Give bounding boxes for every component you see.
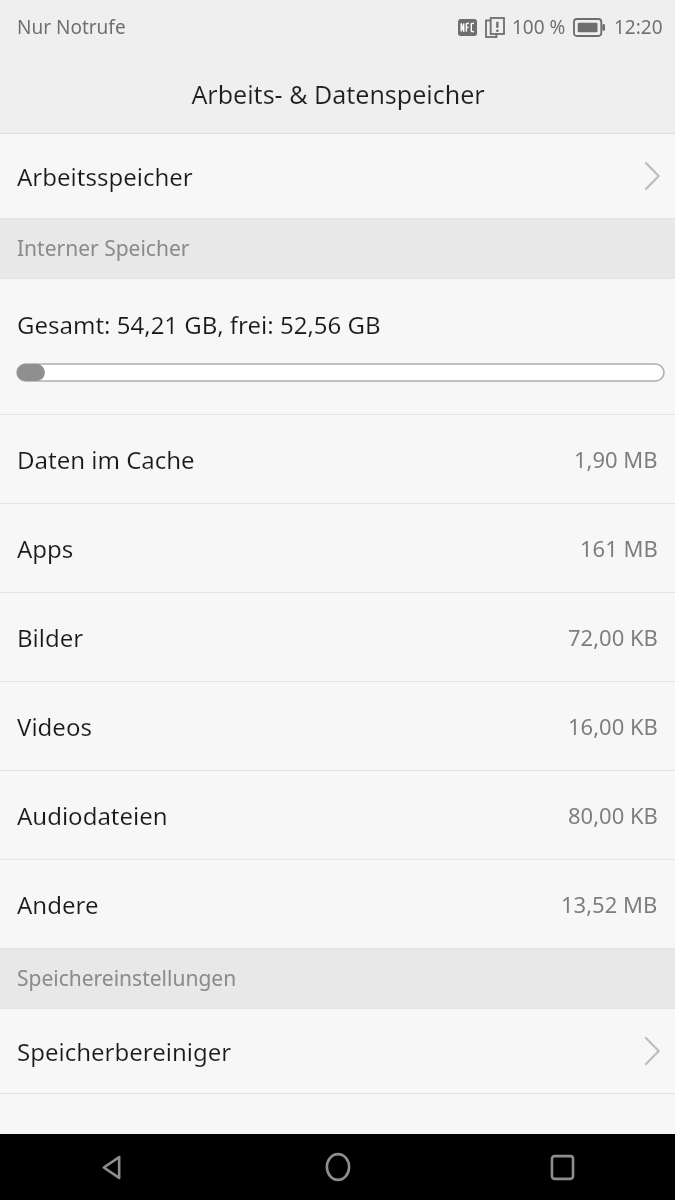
staticText: 100 % bbox=[512, 14, 566, 40]
button[interactable]: Arbeitsspeicher bbox=[0, 134, 675, 218]
staticText: Speicherbereiniger bbox=[17, 1035, 232, 1068]
staticText: Gesamt: 54,21 GB, frei: 52,56 GB bbox=[17, 308, 381, 341]
staticText: 12:20 bbox=[614, 14, 663, 40]
staticText: Videos bbox=[17, 710, 92, 743]
button[interactable]: Recent apps bbox=[450, 1134, 675, 1200]
staticText: Arbeits- & Datenspeicher bbox=[191, 77, 485, 111]
staticText: 161 MB bbox=[580, 533, 658, 563]
button[interactable]: Speicherbereiniger bbox=[0, 1009, 675, 1093]
staticText: Andere bbox=[17, 888, 99, 921]
button[interactable]: Apps bbox=[0, 504, 675, 592]
button[interactable]: Andere bbox=[0, 860, 675, 948]
staticText: 16,00 KB bbox=[568, 711, 658, 741]
staticText: 72,00 KB bbox=[568, 622, 658, 652]
button[interactable]: Back bbox=[0, 1134, 225, 1200]
staticText: Apps bbox=[17, 532, 74, 565]
staticText: Interner Speicher bbox=[17, 234, 190, 263]
staticText: Arbeitsspeicher bbox=[17, 160, 193, 193]
button[interactable]: Gesamt: 54,21 GB, frei: 52,56 GB bbox=[0, 279, 675, 414]
staticText: Nur Notrufe bbox=[17, 14, 126, 40]
staticText: Bilder bbox=[17, 621, 84, 654]
button[interactable]: Videos bbox=[0, 682, 675, 770]
button[interactable]: Bilder bbox=[0, 593, 675, 681]
staticText: 13,52 MB bbox=[561, 889, 658, 919]
button[interactable]: Daten im Cache bbox=[0, 415, 675, 503]
staticText: Audiodateien bbox=[17, 799, 168, 832]
staticText: Speichereinstellungen bbox=[17, 964, 237, 993]
staticText: 1,90 MB bbox=[574, 444, 658, 474]
button[interactable]: Audiodateien bbox=[0, 771, 675, 859]
staticText: 80,00 KB bbox=[568, 800, 658, 830]
staticText: Daten im Cache bbox=[17, 443, 195, 476]
button[interactable]: Home bbox=[225, 1134, 450, 1200]
